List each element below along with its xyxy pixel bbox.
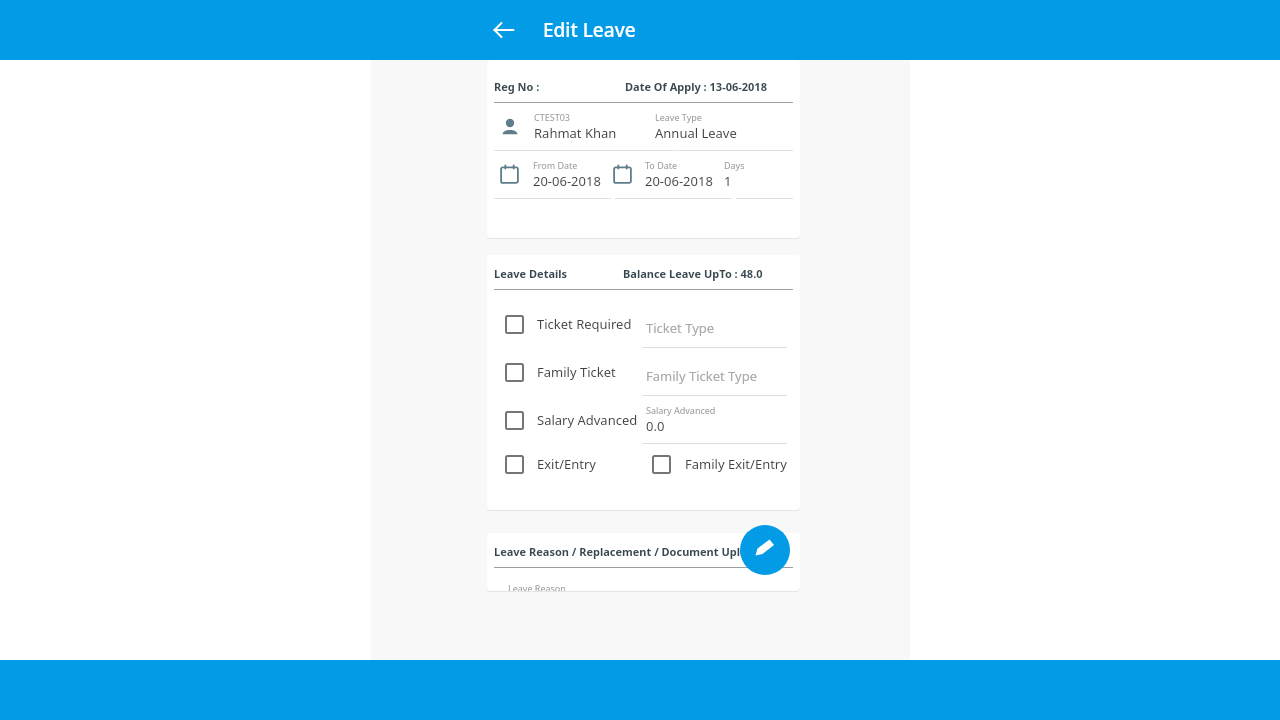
staticText: Family Ticket (537, 363, 616, 381)
staticText: 0.0 (646, 417, 665, 435)
staticText: Annual Leave (655, 124, 737, 142)
staticText: Balance Leave UpTo : 48.0 (623, 266, 763, 281)
button[interactable]: Family Ticket (494, 348, 642, 396)
button[interactable]: Ticket Type (642, 300, 793, 348)
staticText: Leave Details (494, 266, 568, 281)
button[interactable]: Family Exit/Entry (642, 444, 793, 484)
staticText: Leave Type (655, 111, 702, 123)
staticText: Ticket Type (646, 319, 715, 337)
staticText: Salary Advanced (646, 404, 716, 416)
button[interactable]: Salary Advanced (494, 396, 642, 444)
staticText: Reg No : (494, 79, 540, 94)
button[interactable]: Edit (740, 525, 790, 575)
staticText: Edit Leave (543, 17, 636, 43)
button[interactable]: Family Ticket Type (642, 348, 793, 396)
button[interactable]: Salary Advanced (642, 396, 793, 444)
staticText: CTEST03 (534, 111, 570, 123)
staticText: 20-06-2018 (645, 172, 713, 190)
staticText: Family Exit/Entry (685, 455, 787, 473)
staticText: Days (724, 159, 745, 171)
staticText: From Date (533, 159, 578, 171)
staticText: Leave Reason (508, 582, 566, 591)
button[interactable]: Back (487, 13, 521, 47)
staticText: Date Of Apply : 13-06-2018 (625, 79, 767, 94)
staticText: To Date (645, 159, 678, 171)
staticText: 1 (724, 172, 732, 190)
button[interactable]: Exit/Entry (494, 444, 642, 484)
staticText: Rahmat Khan (534, 124, 617, 142)
staticText: 20-06-2018 (533, 172, 601, 190)
staticText: Leave Reason / Replacement / Document Up… (494, 544, 761, 559)
staticText: Family Ticket Type (646, 367, 758, 385)
staticText: Ticket Required (537, 315, 632, 333)
staticText: Exit/Entry (537, 455, 596, 473)
staticText: Salary Advanced (537, 411, 638, 429)
button[interactable]: Ticket Required (494, 300, 642, 348)
